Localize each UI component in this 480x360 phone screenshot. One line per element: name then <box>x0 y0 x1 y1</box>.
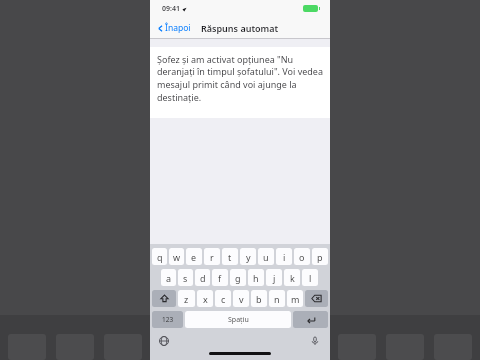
button[interactable]: r <box>204 248 220 265</box>
button[interactable]: w <box>169 248 184 265</box>
button[interactable]: z <box>178 290 195 307</box>
button[interactable]: j <box>266 269 282 286</box>
button[interactable]: f <box>212 269 228 286</box>
button[interactable]: Dictate <box>308 334 322 348</box>
button[interactable]: Change keyboard <box>157 334 171 348</box>
staticText: b <box>256 293 262 305</box>
staticText: a <box>166 272 172 284</box>
button[interactable]: Backspace <box>305 290 328 307</box>
button[interactable]: n <box>269 290 285 307</box>
staticText: h <box>253 272 259 284</box>
button[interactable]: k <box>284 269 300 286</box>
staticText: u <box>263 251 269 263</box>
staticText: e <box>191 251 197 263</box>
staticText: x <box>203 293 208 305</box>
staticText: Spațiu <box>228 315 249 325</box>
button[interactable]: a <box>161 269 176 286</box>
button[interactable]: o <box>294 248 310 265</box>
staticText: w <box>173 251 181 263</box>
button[interactable]: t <box>222 248 238 265</box>
button[interactable]: p <box>312 248 328 265</box>
button[interactable]: q <box>152 248 167 265</box>
staticText: o <box>299 251 305 263</box>
staticText: f <box>218 272 222 284</box>
staticText: q <box>157 251 163 263</box>
button[interactable]: v <box>233 290 249 307</box>
button[interactable]: Return <box>293 311 328 328</box>
button[interactable]: l <box>302 269 318 286</box>
staticText: d <box>200 272 206 284</box>
button[interactable]: s <box>178 269 193 286</box>
button[interactable]: c <box>215 290 231 307</box>
button[interactable]: Shift <box>152 290 176 307</box>
button[interactable]: Înapoi <box>154 19 194 37</box>
staticText: Răspuns automat <box>201 22 279 34</box>
staticText: Șofez și am activat opțiunea "Nu deranja… <box>157 53 323 104</box>
staticText: z <box>184 293 189 305</box>
staticText: p <box>317 251 323 263</box>
staticText: n <box>274 293 280 305</box>
staticText: c <box>221 293 226 305</box>
staticText: Înapoi <box>165 22 191 34</box>
button[interactable]: x <box>197 290 213 307</box>
button[interactable]: Spațiu <box>185 311 291 328</box>
staticText: k <box>290 272 295 284</box>
button[interactable]: g <box>230 269 246 286</box>
staticText: v <box>239 293 244 305</box>
staticText: i <box>283 251 286 263</box>
staticText: 09:41 <box>162 4 180 14</box>
staticText: r <box>210 251 214 263</box>
staticText: g <box>235 272 241 284</box>
button[interactable]: m <box>287 290 303 307</box>
staticText: s <box>183 272 188 284</box>
staticText: 123 <box>162 315 174 324</box>
button[interactable]: d <box>195 269 210 286</box>
button[interactable]: Șofez și am activat opțiunea "Nu deranja… <box>150 47 330 118</box>
button[interactable]: i <box>276 248 292 265</box>
button[interactable]: u <box>258 248 274 265</box>
button[interactable]: 123 <box>152 311 183 328</box>
staticText: m <box>291 293 300 305</box>
button[interactable]: h <box>248 269 264 286</box>
button[interactable]: e <box>186 248 202 265</box>
staticText: l <box>309 272 312 284</box>
staticText: y <box>246 251 251 263</box>
staticText: j <box>273 272 276 284</box>
button[interactable]: y <box>240 248 256 265</box>
button[interactable]: b <box>251 290 267 307</box>
staticText: t <box>228 251 232 263</box>
